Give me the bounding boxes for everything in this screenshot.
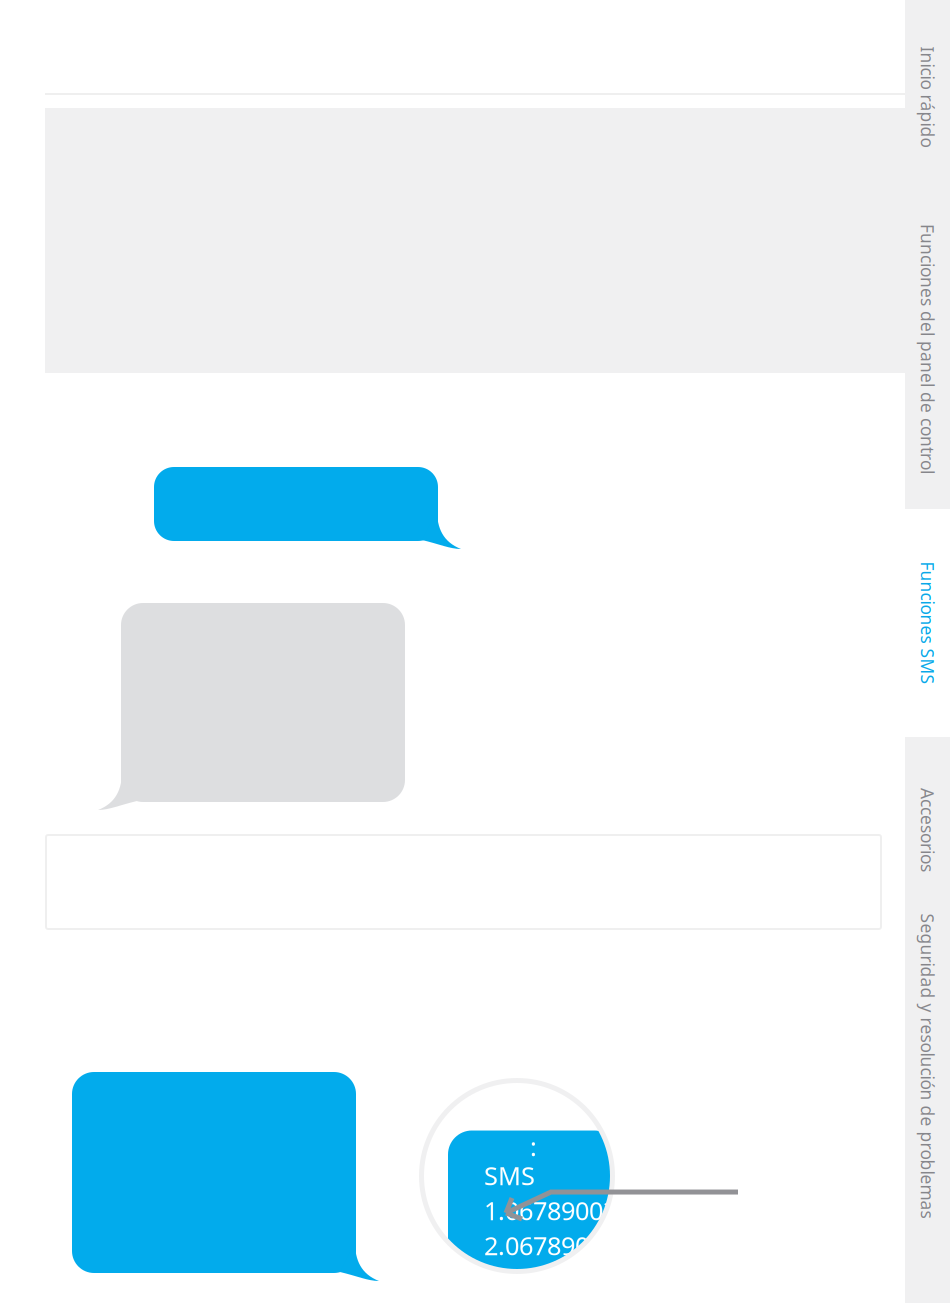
- staticText: SMS: [484, 1159, 535, 1192]
- button[interactable]: Seguridad y resolución de problemas: [905, 927, 950, 1303]
- staticText: Inicio rápido: [877, 85, 950, 108]
- button[interactable]: Inicio rápido: [905, 0, 950, 186]
- button[interactable]: Funciones SMS: [905, 509, 950, 737]
- staticText: Funciones del panel de control: [802, 337, 950, 360]
- staticText: Accesorios: [885, 818, 950, 841]
- staticText: :: [530, 1130, 537, 1163]
- staticText: Funciones SMS: [866, 611, 950, 634]
- button[interactable]: Funciones del panel de control: [905, 186, 950, 509]
- staticText: 1.06789003: [484, 1194, 617, 1227]
- staticText: Seguridad y resolución de problemas: [775, 1054, 950, 1077]
- staticText: 2.0678900: [484, 1229, 603, 1262]
- button[interactable]: Accesorios: [905, 737, 950, 927]
